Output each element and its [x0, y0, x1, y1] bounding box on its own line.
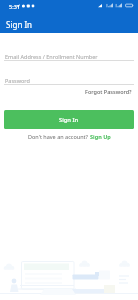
staticText: Password: [5, 77, 30, 84]
staticText: Sign In: [6, 19, 33, 30]
staticText: Email Address / Enrollment Number: [5, 53, 98, 60]
button[interactable]: Sign Up: [90, 133, 111, 140]
staticText: Don't have an account?: [28, 133, 90, 140]
button[interactable]: Sign In: [4, 110, 134, 129]
button[interactable]: Password: [4, 76, 134, 85]
button[interactable]: Forgot Password?: [83, 86, 134, 97]
button[interactable]: Email Address / Enrollment Number: [4, 52, 134, 61]
staticText: 5:31: [9, 3, 20, 10]
staticText: Sign In: [59, 116, 79, 124]
